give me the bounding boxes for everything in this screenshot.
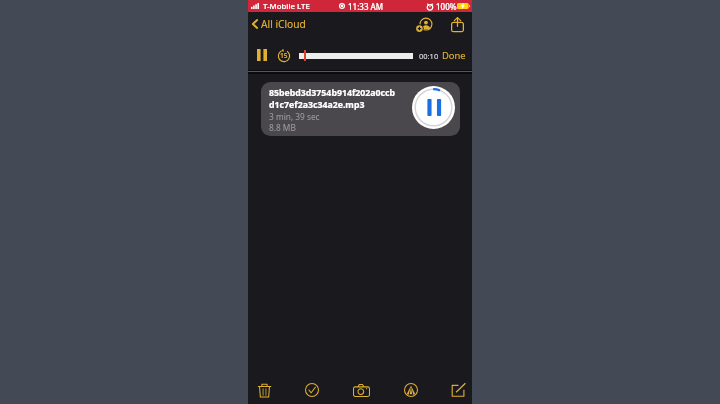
button[interactable]: Select — [291, 374, 333, 404]
button[interactable]: All iCloud — [250, 13, 308, 35]
staticText: T-Mobile — [263, 1, 296, 12]
staticText: 8.8 MB — [269, 122, 296, 133]
button[interactable]: Done — [440, 45, 468, 66]
button[interactable]: Markup — [390, 374, 432, 404]
button[interactable]: Scan documents — [340, 374, 382, 404]
staticText: 100% — [436, 1, 457, 12]
staticText: Done — [442, 49, 466, 62]
button[interactable]: 85bebd3d3754b914f202a0ccb — [261, 82, 460, 136]
staticText: 11:33 AM — [348, 1, 384, 12]
staticText: All iCloud — [261, 17, 306, 31]
button[interactable]: Delete — [243, 374, 285, 404]
staticText: LTE — [297, 1, 310, 12]
button[interactable]: Share — [446, 13, 468, 35]
staticText: 15 — [280, 51, 288, 60]
button[interactable]: Pause — [253, 46, 271, 64]
staticText: d1c7ef2a3c34a2e.mp3 — [269, 99, 365, 111]
staticText: 3 min, 39 sec — [269, 111, 320, 122]
staticText: 85bebd3d3754b914f202a0ccb — [269, 87, 396, 99]
button[interactable]: Compose — [437, 374, 479, 404]
button[interactable]: Pause playback — [411, 85, 455, 129]
button[interactable]: Add people — [413, 14, 435, 36]
button[interactable]: Skip back 15 seconds — [274, 46, 293, 65]
staticText: 00:10 — [419, 51, 439, 61]
